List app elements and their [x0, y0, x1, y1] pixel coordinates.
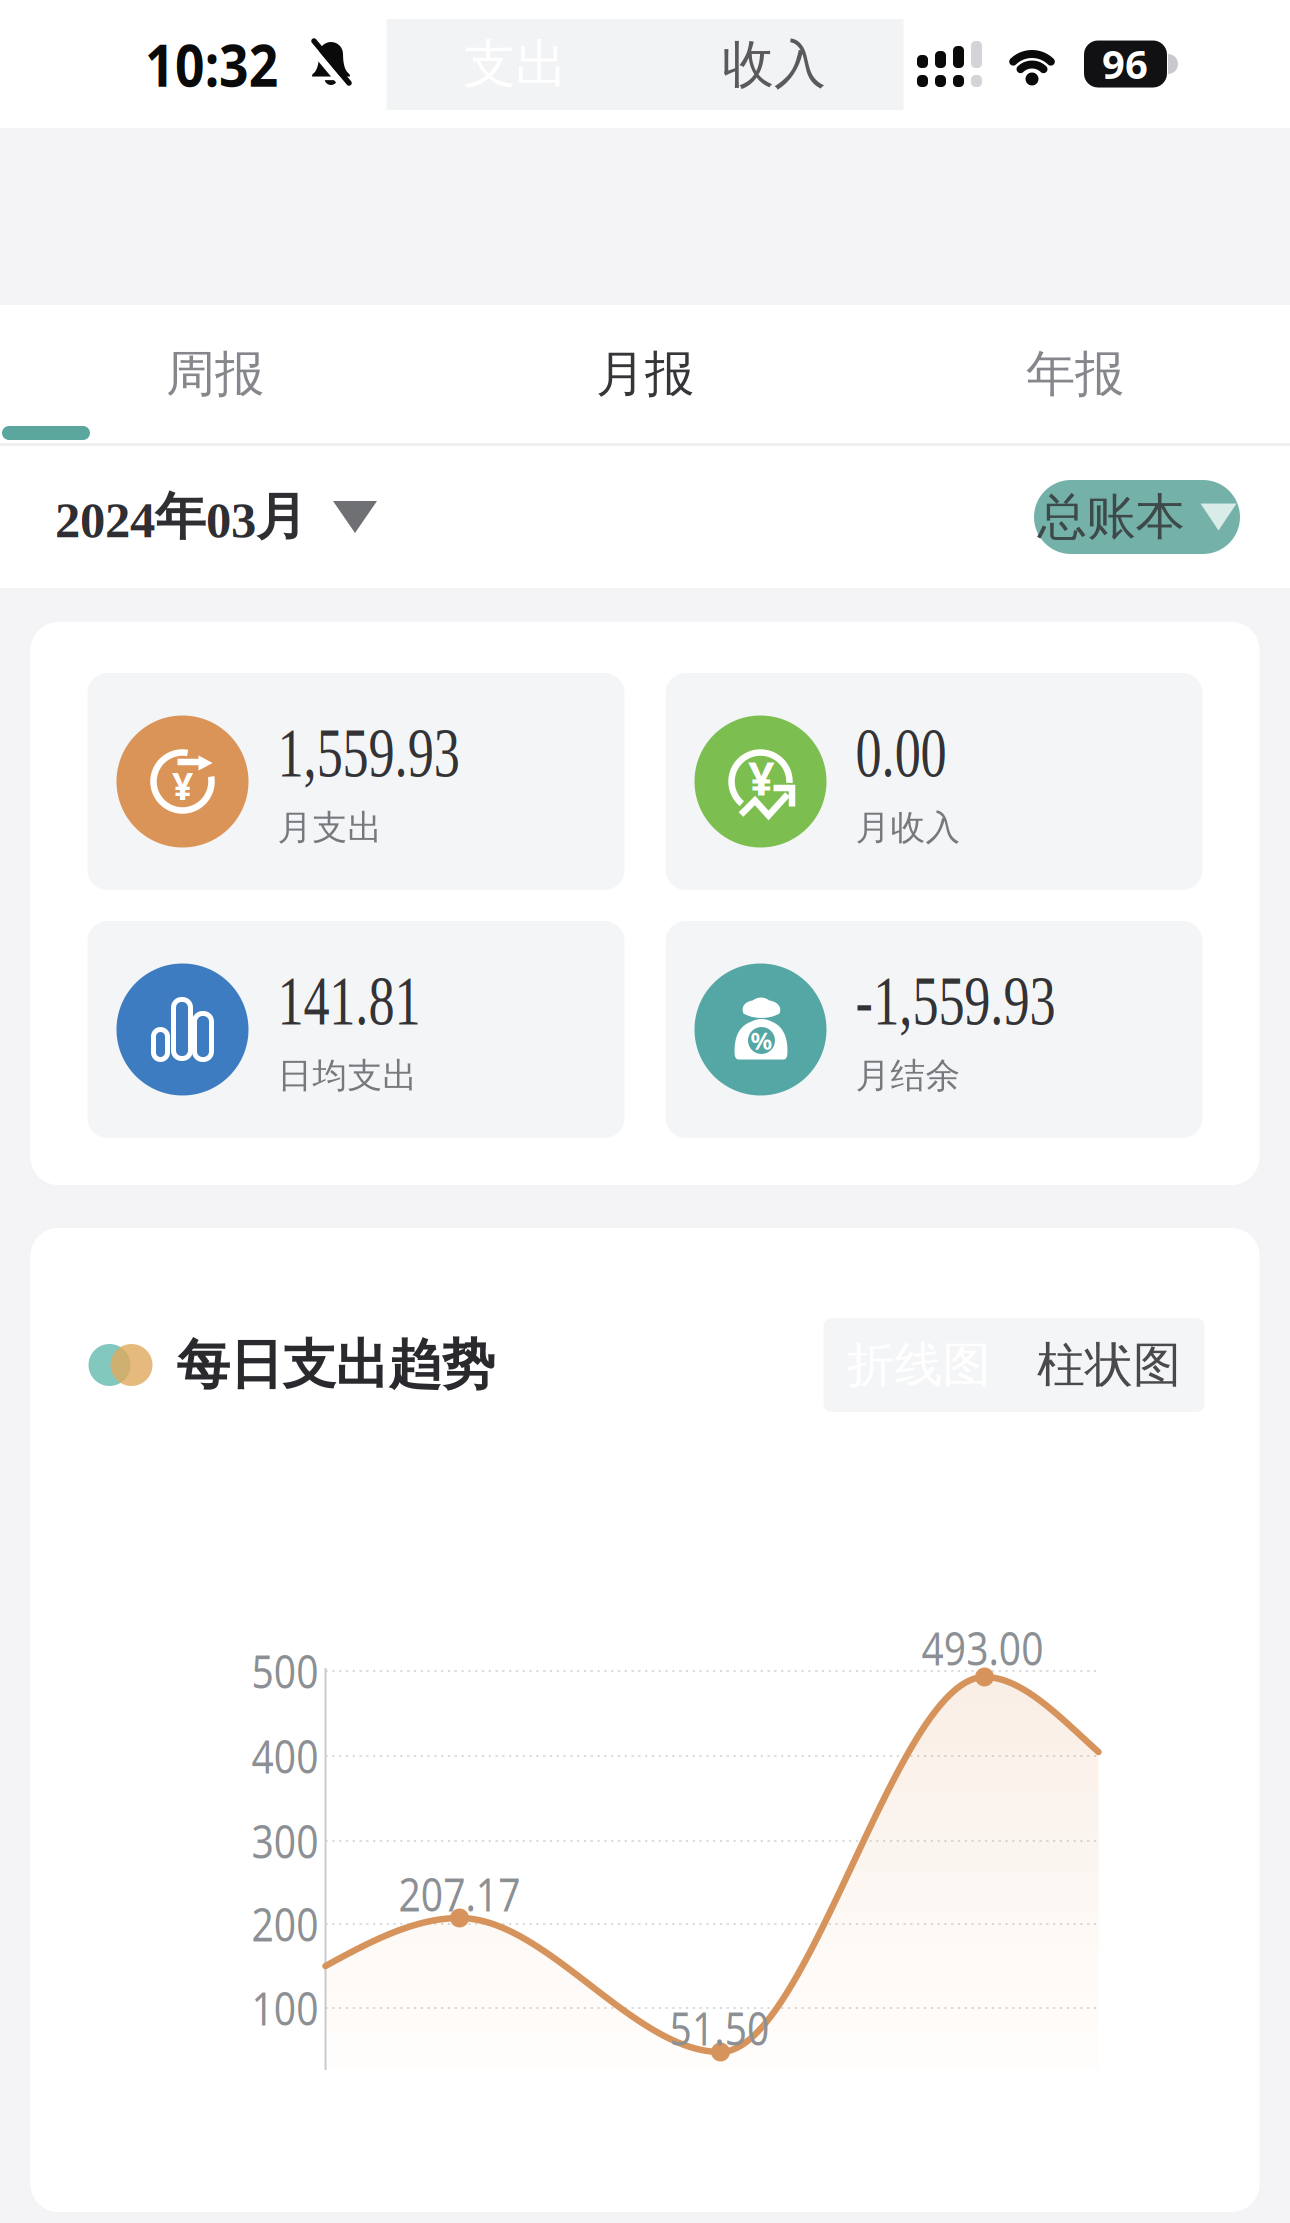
staticText: 总账本 [1037, 486, 1184, 548]
staticText: ¥ [748, 746, 775, 809]
staticText: 收入 [722, 32, 826, 97]
button[interactable]: 总账本 [1034, 480, 1240, 554]
staticText: 年报 [1026, 343, 1124, 405]
button[interactable]: 2024年03月 [55, 485, 377, 549]
staticText: 500 [240, 1640, 318, 1702]
staticText: 96 [1102, 36, 1148, 91]
staticText: 300 [240, 1810, 318, 1872]
staticText: 0.00 [855, 713, 978, 792]
staticText: 10:32 [145, 24, 297, 104]
staticText: 1,559.93 [277, 713, 523, 792]
staticText: 每日支出趋势 [176, 1331, 494, 1399]
staticText: 月支出 [277, 806, 382, 849]
button[interactable]: 周报 [0, 305, 430, 443]
staticText: 月结余 [855, 1054, 960, 1097]
staticText: 400 [240, 1725, 318, 1787]
staticText: 51.50 [661, 1997, 777, 2059]
staticText: 207.17 [388, 1863, 530, 1925]
staticText: 月报 [596, 343, 694, 405]
staticText: 100 [240, 1977, 318, 2039]
button[interactable]: 年报 [860, 305, 1290, 443]
staticText: 日均支出 [277, 1054, 417, 1097]
staticText: 2024年03月 [55, 485, 307, 549]
staticText: -1,559.93 [855, 961, 1125, 1040]
button[interactable]: 柱状图 [1013, 1318, 1204, 1412]
staticText: 折线图 [846, 1335, 990, 1395]
staticText: 200 [240, 1893, 318, 1955]
staticText: 月收入 [855, 806, 960, 849]
staticText: ¥ [172, 760, 193, 811]
button[interactable]: 月报 [430, 305, 860, 443]
staticText: 周报 [166, 343, 264, 405]
staticText: 493.00 [911, 1617, 1053, 1679]
staticText: 141.81 [277, 961, 470, 1040]
button[interactable]: 收入 [644, 19, 903, 110]
staticText: 柱状图 [1037, 1335, 1181, 1395]
staticText: % [750, 1024, 772, 1057]
button[interactable]: 折线图 [823, 1318, 1013, 1412]
staticText: 支出 [463, 32, 567, 97]
